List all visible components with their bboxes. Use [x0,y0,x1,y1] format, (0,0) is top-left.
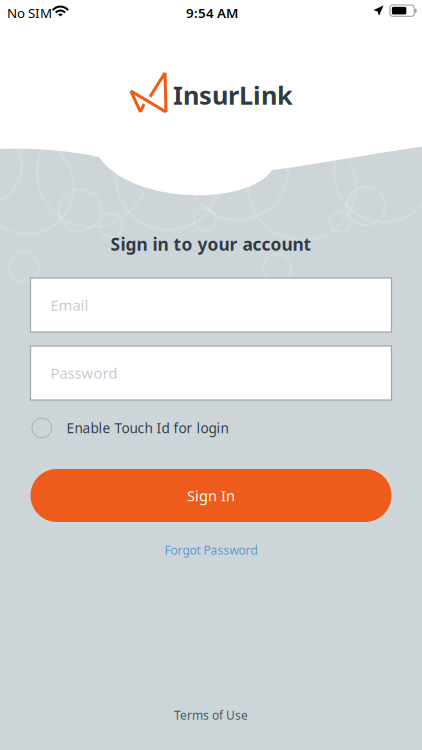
staticText: InsurLink [173,78,293,112]
staticText: 9:54 AM [186,4,238,22]
button[interactable]: Enable Touch Id for login [32,417,393,439]
staticText: Password [50,363,117,383]
staticText: Sign in to your account [110,232,311,256]
button[interactable]: Sign In [30,469,391,522]
staticText: Terms of Use [174,707,248,723]
button[interactable]: Email [30,278,391,332]
staticText: Forgot Password [164,542,257,558]
staticText: Email [50,295,88,315]
button[interactable]: Forgot Password [0,542,422,558]
staticText: Enable Touch Id for login [67,419,229,437]
button[interactable]: Terms of Use [0,707,422,723]
staticText: No SIM [7,4,52,22]
button[interactable]: Password [30,346,391,400]
staticText: Sign In [187,486,235,505]
